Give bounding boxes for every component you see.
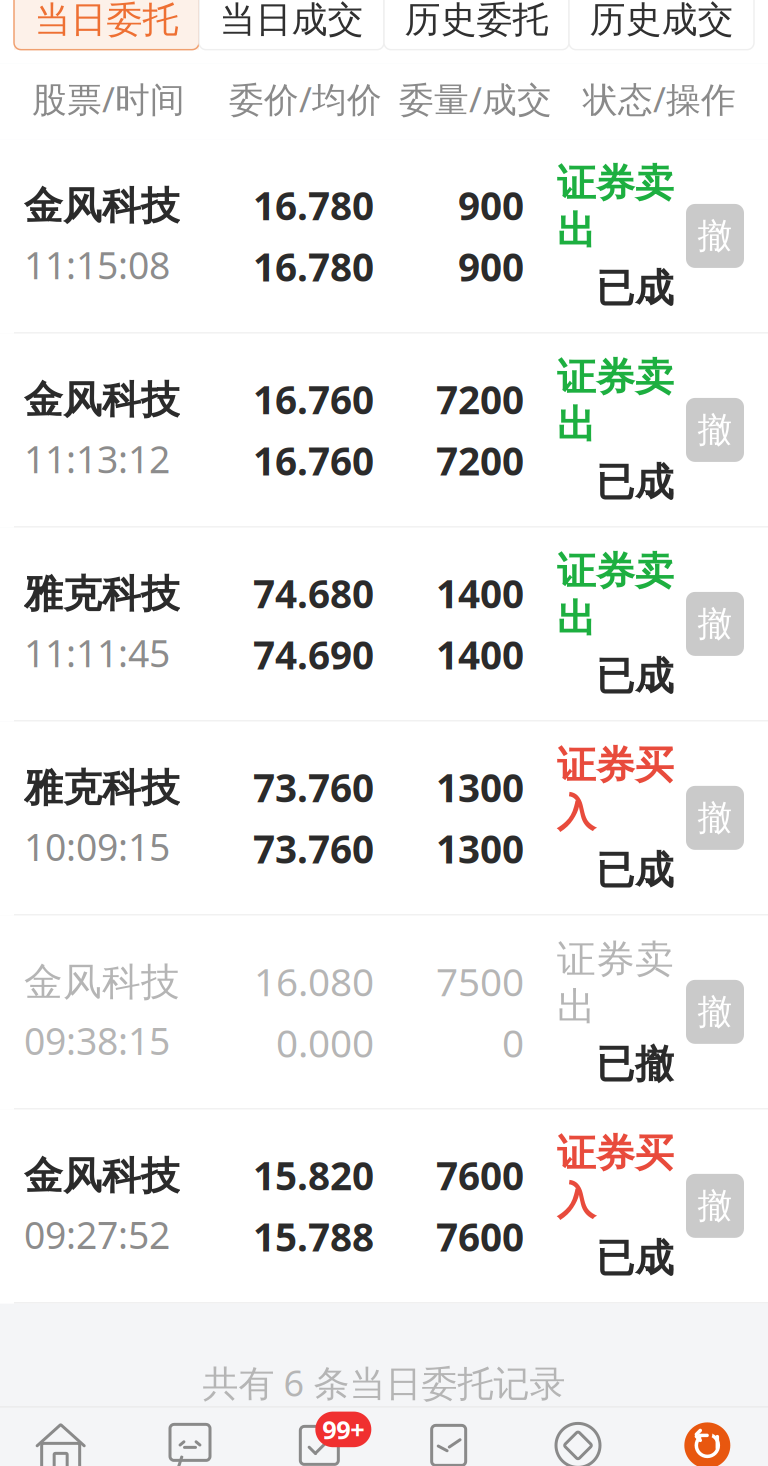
staticText: 15.820 xyxy=(253,1149,374,1201)
staticText: 7200 xyxy=(436,374,524,425)
staticText: 证券卖出 xyxy=(557,160,674,255)
staticText: 16.780 xyxy=(253,241,374,292)
staticText: 11:13:12 xyxy=(24,434,170,483)
staticText: 雅克科技 xyxy=(24,570,180,618)
staticText: 1400 xyxy=(436,568,524,619)
staticText: 900 xyxy=(458,241,524,292)
staticText: 撤 xyxy=(697,409,732,451)
staticText: 已成 xyxy=(596,265,674,312)
button[interactable]: 撤 xyxy=(686,398,744,462)
staticText: 11:15:08 xyxy=(24,240,170,289)
staticText: 历史成交 xyxy=(589,0,733,42)
staticText: 委量/成交 xyxy=(399,76,552,122)
staticText: 73.760 xyxy=(253,823,374,874)
button[interactable]: 历史成交 xyxy=(569,0,754,50)
staticText: 当日成交 xyxy=(219,0,363,42)
staticText: 09:38:15 xyxy=(24,1016,170,1065)
staticText: 已成 xyxy=(596,1235,674,1282)
staticText: 16.760 xyxy=(253,435,374,486)
staticText: 股票/时间 xyxy=(32,76,185,122)
button[interactable]: 撤 xyxy=(686,204,744,268)
staticText: 16.080 xyxy=(254,955,374,1007)
staticText: 1400 xyxy=(436,629,524,680)
button[interactable]: 撤 xyxy=(686,980,744,1044)
staticText: 雅克科技 xyxy=(24,764,180,812)
button[interactable]: 历史委托 xyxy=(384,0,569,50)
staticText: 15.788 xyxy=(253,1211,374,1262)
button[interactable]: 当日委托 xyxy=(14,0,199,50)
staticText: 10:09:15 xyxy=(24,822,170,871)
staticText: 证券买入 xyxy=(557,1130,674,1225)
staticText: 金风科技 xyxy=(24,1152,180,1200)
staticText: 证券买入 xyxy=(557,742,674,837)
button[interactable]: 当日成交 xyxy=(199,0,384,50)
button[interactable]: 社区 xyxy=(125,1419,255,1466)
staticText: 撤 xyxy=(697,603,732,645)
button[interactable]: 首页 xyxy=(0,1419,125,1466)
staticText: 99+ xyxy=(322,1413,364,1446)
staticText: 1300 xyxy=(436,823,524,874)
button[interactable]: 99+ xyxy=(255,1419,384,1466)
staticText: 0 xyxy=(502,1017,524,1068)
staticText: 当日委托 xyxy=(34,0,178,42)
staticText: 撤 xyxy=(697,991,732,1033)
staticText: 已撤 xyxy=(596,1041,674,1088)
button[interactable]: 理财 xyxy=(513,1419,643,1466)
button[interactable]: 交易 xyxy=(643,1419,768,1466)
staticText: 共有 6 条当日委托记录 xyxy=(202,1359,565,1406)
staticText: 7200 xyxy=(436,435,524,486)
staticText: 已成 xyxy=(596,847,674,894)
staticText: 撤 xyxy=(697,215,732,257)
staticText: 撤 xyxy=(697,1185,732,1227)
staticText: 撤 xyxy=(697,797,732,839)
staticText: 0.000 xyxy=(276,1017,374,1068)
staticText: 1300 xyxy=(436,761,524,813)
staticText: 74.680 xyxy=(253,568,374,619)
staticText: 证券卖出 xyxy=(557,548,674,643)
staticText: 历史委托 xyxy=(404,0,548,42)
staticText: 16.780 xyxy=(253,180,374,231)
staticText: 金风科技 xyxy=(24,376,180,424)
staticText: 证券卖出 xyxy=(557,936,674,1031)
staticText: 状态/操作 xyxy=(583,76,736,122)
staticText: 09:27:52 xyxy=(24,1210,170,1259)
staticText: 已成 xyxy=(596,459,674,506)
staticText: 委价/均价 xyxy=(229,76,382,122)
staticText: 证券卖出 xyxy=(557,354,674,449)
button[interactable]: 行情 xyxy=(384,1419,513,1466)
staticText: 7600 xyxy=(436,1149,524,1201)
staticText: 金风科技 xyxy=(24,958,180,1006)
staticText: 金风科技 xyxy=(24,182,180,230)
button[interactable]: 撤 xyxy=(686,592,744,656)
staticText: 73.760 xyxy=(253,761,374,813)
staticText: 11:11:45 xyxy=(24,628,170,677)
staticText: 7500 xyxy=(436,955,524,1007)
button[interactable]: 撤 xyxy=(686,1174,744,1238)
staticText: 16.760 xyxy=(253,374,374,425)
staticText: 900 xyxy=(458,180,524,231)
button[interactable]: 撤 xyxy=(686,786,744,850)
staticText: 7600 xyxy=(436,1211,524,1262)
staticText: 已成 xyxy=(596,653,674,700)
staticText: 74.690 xyxy=(253,629,374,680)
